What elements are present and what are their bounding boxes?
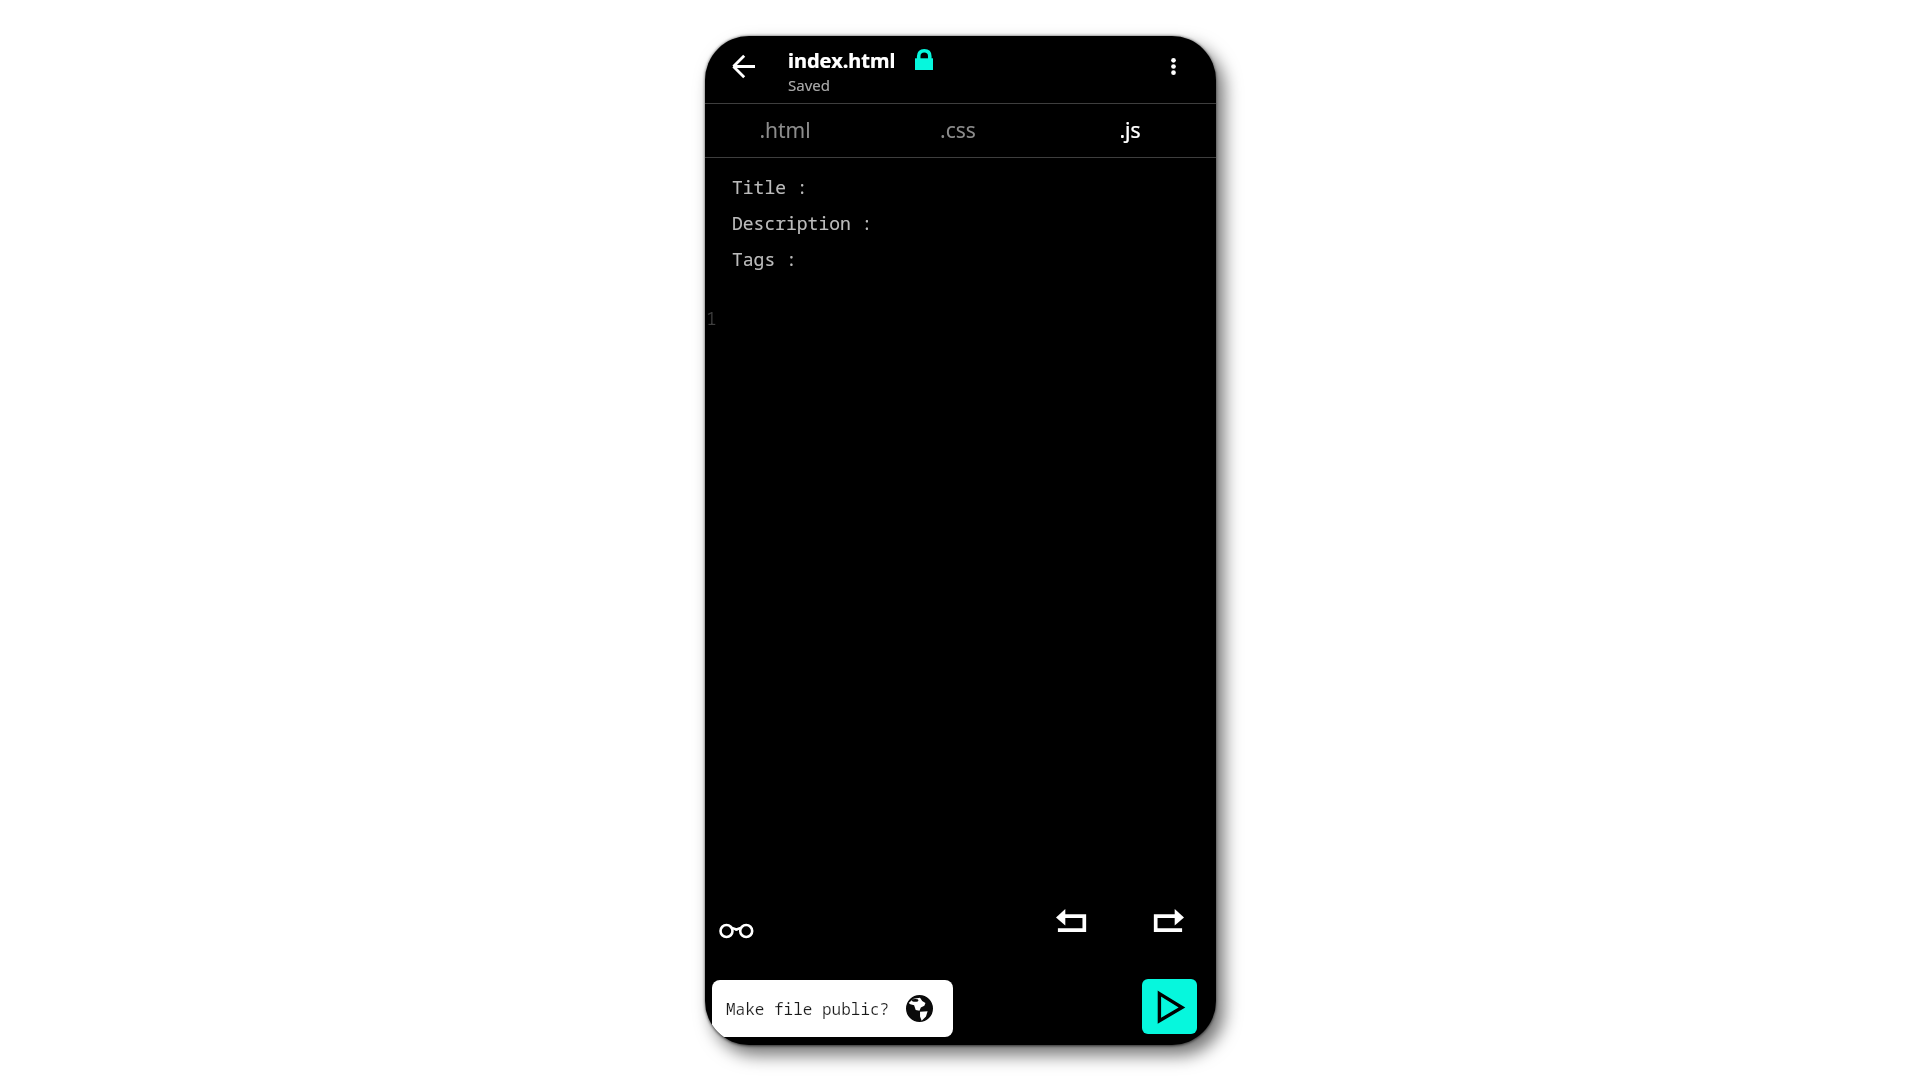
button[interactable]: Preview bbox=[714, 909, 758, 953]
staticText: Tags : bbox=[732, 247, 797, 272]
button[interactable]: Redo bbox=[1146, 898, 1190, 942]
button[interactable]: Run bbox=[1142, 979, 1197, 1034]
button[interactable]: Back bbox=[721, 44, 766, 89]
staticText: .js bbox=[1119, 116, 1141, 145]
button[interactable]: Make file public? bbox=[712, 980, 953, 1037]
button[interactable]: .js bbox=[1044, 104, 1216, 157]
staticText: .css bbox=[940, 116, 976, 145]
staticText: index.html bbox=[788, 47, 896, 74]
staticText: Make file public? bbox=[726, 998, 890, 1020]
button[interactable]: Undo bbox=[1049, 898, 1093, 942]
button[interactable]: More options bbox=[1151, 44, 1195, 88]
button[interactable]: .css bbox=[872, 104, 1044, 157]
staticText: Description : bbox=[732, 211, 873, 236]
staticText: Saved bbox=[788, 75, 830, 95]
staticText: .html bbox=[759, 116, 811, 145]
button[interactable]: .html bbox=[705, 104, 871, 157]
staticText: Title : bbox=[732, 175, 808, 200]
staticText: 1 bbox=[706, 306, 717, 331]
